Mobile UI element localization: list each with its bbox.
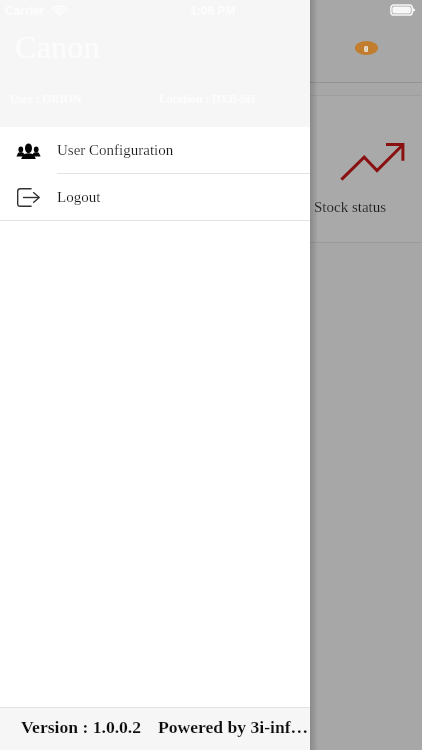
staticText: Powered by 3i-inf…: [158, 717, 309, 736]
staticText: Logout: [57, 189, 101, 206]
button[interactable]: Stock status chart: [317, 96, 422, 242]
staticText: Version : 1.0.0.2: [21, 717, 142, 736]
staticText: Stock status: [314, 199, 387, 216]
button[interactable]: Logout: [0, 174, 310, 220]
button[interactable]: 0: [355, 41, 378, 55]
button[interactable]: User Configuration: [0, 127, 310, 173]
staticText: User Configuration: [57, 142, 174, 159]
staticText: 0: [364, 44, 369, 53]
other: Stock status chart: [337, 140, 407, 182]
